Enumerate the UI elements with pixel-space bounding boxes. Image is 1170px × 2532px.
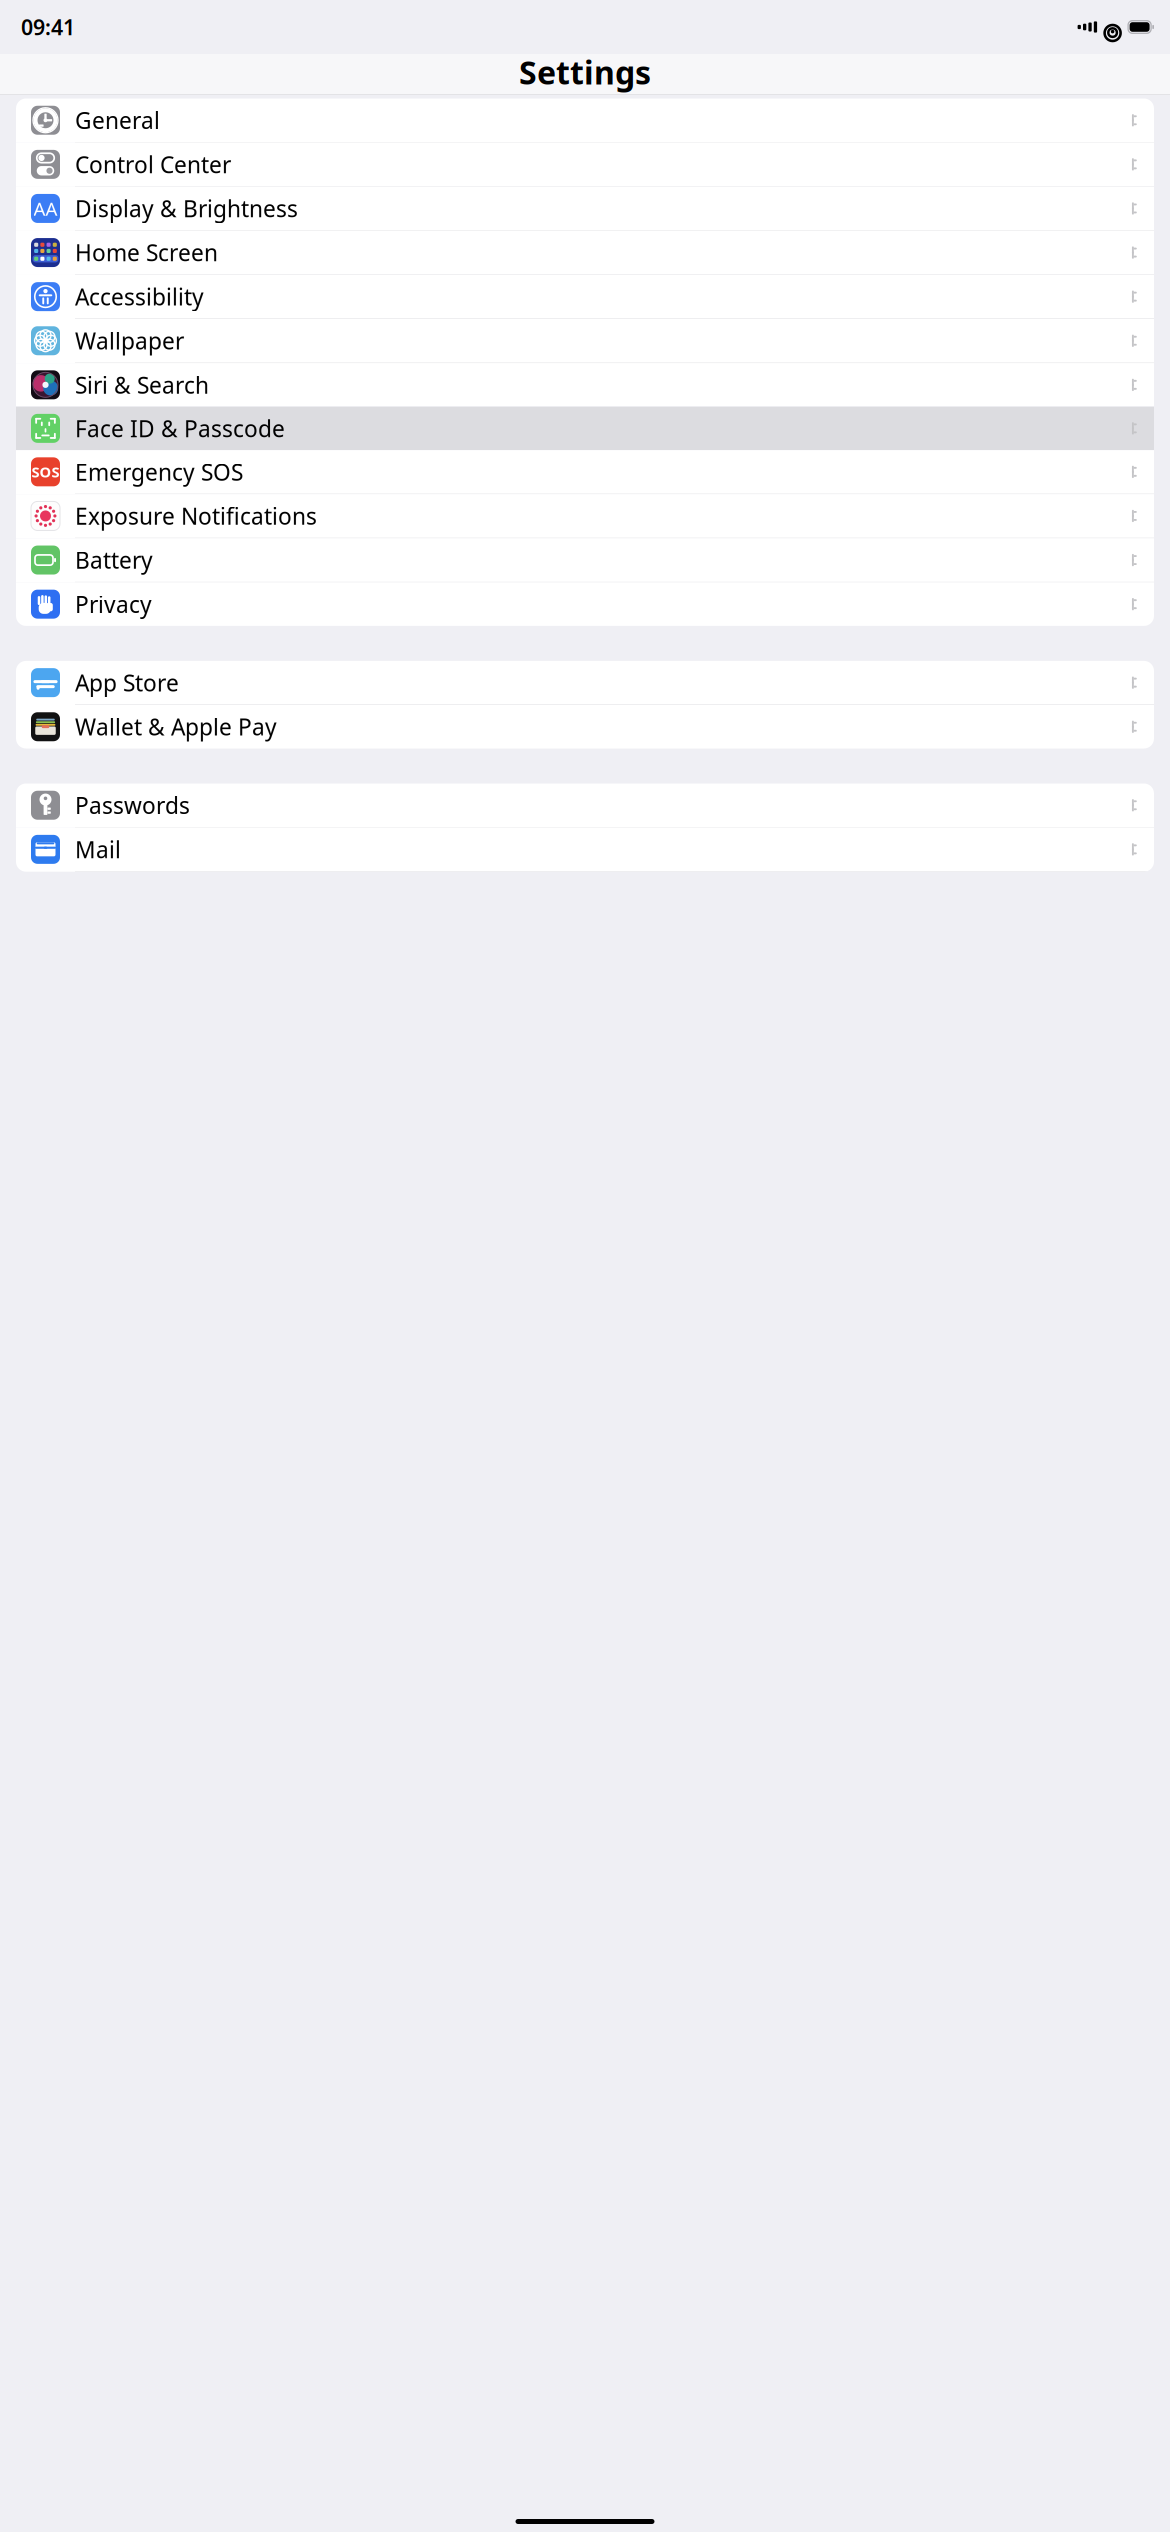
- button[interactable]: Exposure Notifications: [16, 494, 1154, 538]
- button[interactable]: SOS: [16, 450, 1154, 494]
- staticText: Accessibility: [75, 282, 204, 312]
- staticText: General: [75, 105, 160, 135]
- button[interactable]: Home Screen: [16, 231, 1154, 275]
- button[interactable]: Siri & Search: [16, 363, 1154, 407]
- button[interactable]: Battery: [16, 538, 1154, 582]
- staticText: Display & Brightness: [75, 193, 298, 223]
- button[interactable]: Accessibility: [16, 275, 1154, 319]
- staticText: Mail: [75, 834, 121, 864]
- button[interactable]: Face ID & Passcode: [16, 407, 1154, 450]
- button[interactable]: Passwords: [16, 783, 1154, 828]
- button[interactable]: App Store: [16, 661, 1154, 705]
- staticText: SOS: [31, 462, 59, 482]
- staticText: 09:41: [21, 13, 75, 41]
- button[interactable]: AA: [16, 187, 1154, 231]
- button[interactable]: Settings: [0, 54, 1170, 94]
- staticText: Exposure Notifications: [75, 501, 317, 531]
- button[interactable]: Control Center: [16, 143, 1154, 187]
- staticText: Wallpaper: [75, 326, 184, 356]
- staticText: Home Screen: [75, 237, 218, 268]
- staticText: Siri & Search: [75, 370, 209, 400]
- button[interactable]: Privacy: [16, 582, 1154, 626]
- staticText: Settings: [519, 51, 651, 93]
- staticText: Wallet & Apple Pay: [75, 712, 277, 742]
- button[interactable]: Mail: [16, 828, 1154, 872]
- staticText: Face ID & Passcode: [75, 413, 285, 443]
- button[interactable]: General: [16, 98, 1154, 143]
- staticText: Passwords: [75, 790, 190, 820]
- button[interactable]: Wallpaper: [16, 319, 1154, 363]
- staticText: Privacy: [75, 589, 152, 619]
- staticText: App Store: [75, 668, 179, 698]
- button[interactable]: Wallet & Apple Pay: [16, 705, 1154, 748]
- staticText: Control Center: [75, 149, 231, 179]
- staticText: Battery: [75, 545, 153, 575]
- staticText: AA: [33, 196, 57, 221]
- staticText: Emergency SOS: [75, 457, 243, 487]
